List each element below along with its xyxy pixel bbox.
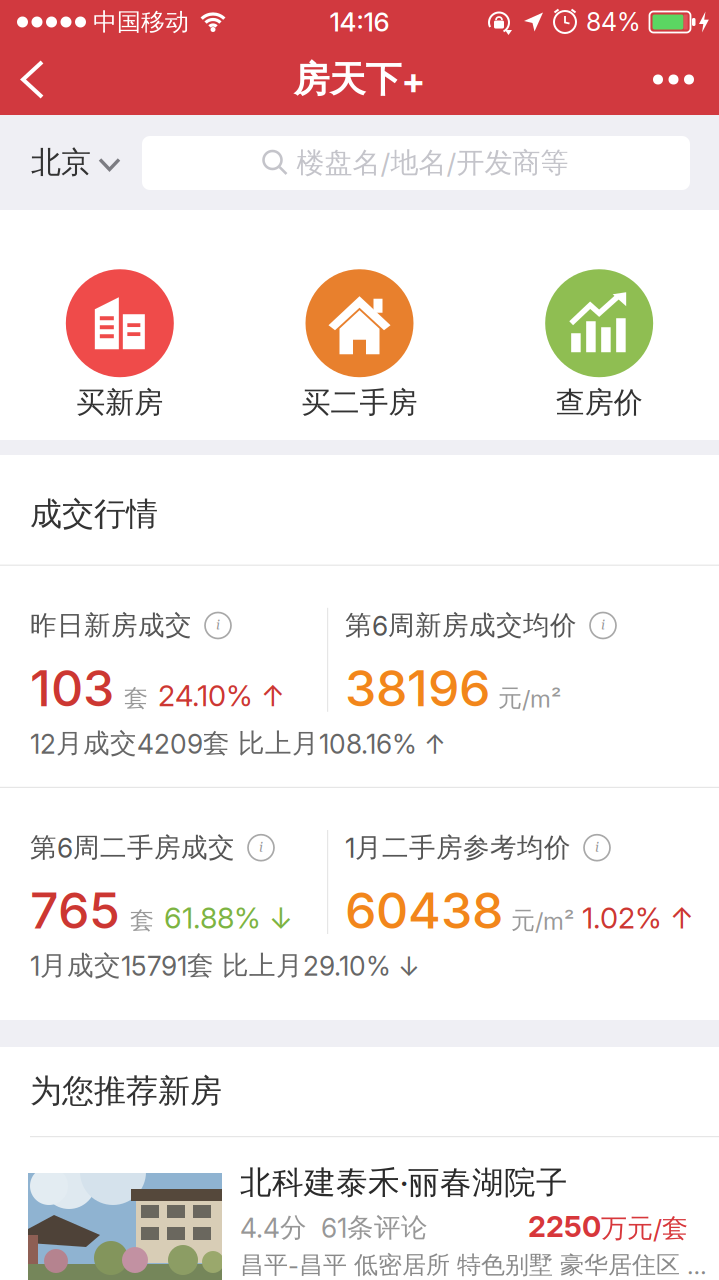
- staticText: 61.88% ↓: [164, 900, 293, 935]
- staticText: 14:16: [329, 6, 389, 38]
- staticText: i: [601, 617, 605, 634]
- staticText: 昌平-昌平 低密居所 特色别墅 豪华居住区 …: [240, 1250, 707, 1280]
- staticText: 买二手房: [301, 384, 417, 421]
- staticText: 2250: [528, 1209, 601, 1244]
- staticText: 60438: [345, 880, 503, 940]
- button[interactable]: 搜索: [142, 136, 690, 190]
- staticText: i: [595, 839, 599, 857]
- staticText: 1月成交15791套 比上月29.10% ↓: [30, 949, 420, 982]
- staticText: i: [216, 617, 220, 634]
- staticText: 万元/套: [601, 1212, 688, 1245]
- staticText: 套: [124, 683, 148, 713]
- staticText: 元/m²: [511, 905, 574, 935]
- button[interactable]: More: [637, 44, 719, 115]
- button[interactable]: 买二手房: [240, 269, 479, 421]
- staticText: 84%: [586, 7, 641, 37]
- staticText: 房天下+: [293, 57, 425, 102]
- staticText: 4.4分 61条评论: [240, 1211, 428, 1244]
- staticText: 1月二手房参考均价: [345, 831, 571, 864]
- staticText: 北科建泰禾·丽春湖院子: [240, 1163, 568, 1203]
- staticText: 38196: [345, 658, 490, 718]
- staticText: 24.10% ↑: [158, 678, 285, 713]
- button[interactable]: Back: [0, 44, 64, 115]
- button[interactable]: 查房价: [479, 269, 719, 421]
- staticText: 套: [130, 905, 154, 935]
- staticText: 成交行情: [30, 494, 158, 534]
- staticText: 第6周二手房成交: [30, 831, 235, 864]
- staticText: 中国移动: [93, 7, 189, 37]
- button[interactable]: 选择城市 北京: [0, 115, 119, 210]
- staticText: 查房价: [556, 384, 643, 421]
- staticText: 昨日新房成交: [30, 609, 192, 642]
- staticText: 北京: [31, 144, 91, 181]
- staticText: 第6周新房成交均价: [345, 609, 577, 642]
- staticText: 1.02% ↑: [582, 900, 694, 935]
- staticText: 楼盘名/地名/开发商等: [296, 145, 568, 181]
- staticText: 元/m²: [498, 683, 561, 713]
- staticText: 为您推荐新房: [30, 1071, 222, 1111]
- staticText: i: [259, 839, 263, 857]
- button[interactable]: 北科建泰禾·丽春湖院子: [0, 1047, 719, 1162]
- staticText: 103: [30, 658, 114, 718]
- staticText: 765: [30, 880, 120, 940]
- button[interactable]: 买新房: [0, 269, 240, 421]
- staticText: 买新房: [76, 384, 163, 421]
- staticText: 12月成交4209套 比上月108.16% ↑: [30, 727, 446, 760]
